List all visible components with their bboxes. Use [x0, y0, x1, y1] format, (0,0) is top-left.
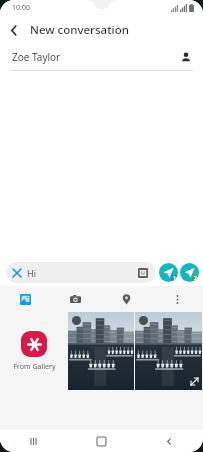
button[interactable]: Send message 1 — [159, 263, 178, 282]
button[interactable]: Send message 2 — [180, 263, 199, 282]
button[interactable]: Clear — [6, 262, 156, 283]
button[interactable]: Recent apps — [0, 430, 67, 452]
button[interactable]: Photo — [68, 312, 134, 390]
staticText: Zoe Taylor — [12, 50, 173, 64]
button[interactable]: Stickers — [136, 266, 150, 280]
button[interactable]: Home — [67, 430, 135, 452]
button[interactable]: Photo — [135, 312, 202, 390]
staticText: 1 — [173, 275, 176, 281]
button[interactable]: From Gallery — [0, 312, 68, 390]
staticText: New conversation — [30, 22, 129, 38]
button[interactable]: Select photo — [72, 316, 81, 325]
staticText: Hi — [27, 267, 136, 279]
button[interactable]: Location — [101, 286, 152, 312]
button[interactable]: Clear — [11, 267, 22, 278]
button[interactable]: More options — [152, 286, 203, 312]
button[interactable]: Back — [0, 16, 28, 44]
button[interactable]: Zoe Taylor — [0, 44, 203, 70]
staticText: 2 — [194, 275, 197, 281]
staticText: 10:00 — [12, 3, 30, 13]
button[interactable]: Camera — [50, 286, 101, 312]
button[interactable]: Select photo — [139, 316, 148, 325]
button[interactable]: Gallery — [0, 286, 50, 312]
button[interactable]: Add contact — [173, 44, 199, 70]
staticText: From Gallery — [13, 362, 56, 372]
button[interactable]: Back — [135, 430, 203, 452]
